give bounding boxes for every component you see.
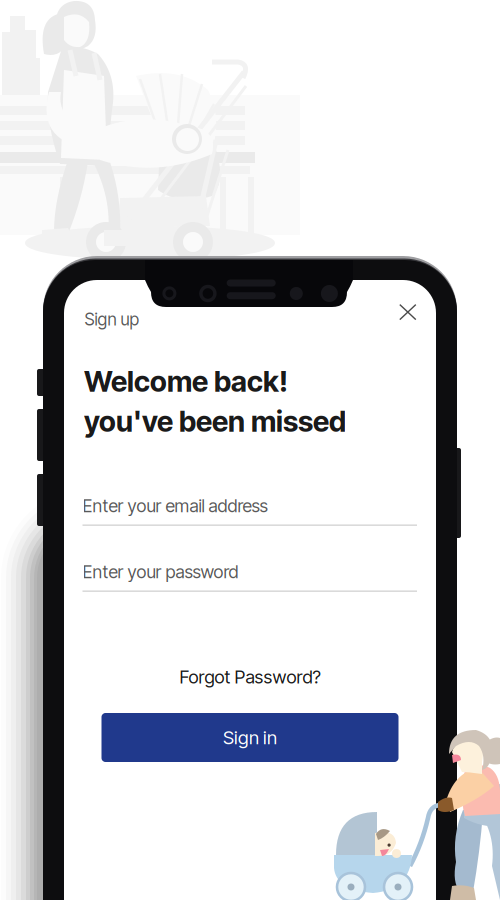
staticText: Sign in xyxy=(223,726,277,749)
staticText: Forgot Password? xyxy=(179,666,320,688)
button[interactable]: Close xyxy=(391,296,425,329)
button[interactable]: Sign up xyxy=(76,301,147,338)
button[interactable]: Sign in xyxy=(101,713,398,762)
staticText: Enter your email address xyxy=(82,495,267,516)
staticText: Enter your password xyxy=(82,561,238,582)
staticText: Welcome back! xyxy=(84,364,288,399)
button[interactable]: Forgot Password? xyxy=(150,663,350,691)
staticText: Sign up xyxy=(84,309,139,330)
staticText: you've been missed xyxy=(84,404,346,439)
